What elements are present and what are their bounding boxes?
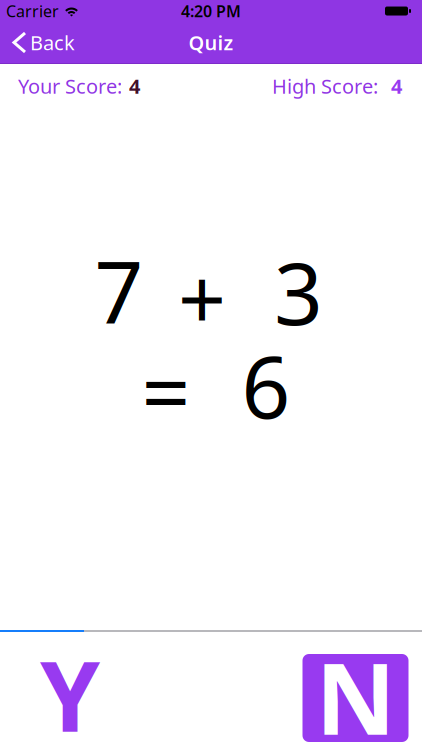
staticText: 6 bbox=[241, 329, 290, 442]
staticText: High Score: bbox=[272, 73, 378, 99]
staticText: + bbox=[178, 241, 226, 353]
staticText: 7 bbox=[94, 234, 143, 348]
staticText: 3 bbox=[274, 235, 323, 349]
staticText: Y bbox=[40, 631, 100, 750]
staticText: 4 bbox=[391, 73, 402, 99]
button[interactable]: N bbox=[302, 654, 408, 742]
staticText: N bbox=[315, 631, 395, 750]
staticText: Back bbox=[30, 29, 75, 56]
staticText: 4 bbox=[129, 73, 140, 99]
staticText: 4:20 PM bbox=[181, 0, 241, 22]
staticText: Quiz bbox=[188, 29, 233, 56]
staticText: Carrier bbox=[6, 0, 59, 22]
staticText: = bbox=[141, 334, 190, 448]
button[interactable]: Back bbox=[14, 29, 75, 56]
staticText: Your Score: bbox=[18, 73, 122, 99]
button[interactable]: Y bbox=[17, 650, 123, 738]
